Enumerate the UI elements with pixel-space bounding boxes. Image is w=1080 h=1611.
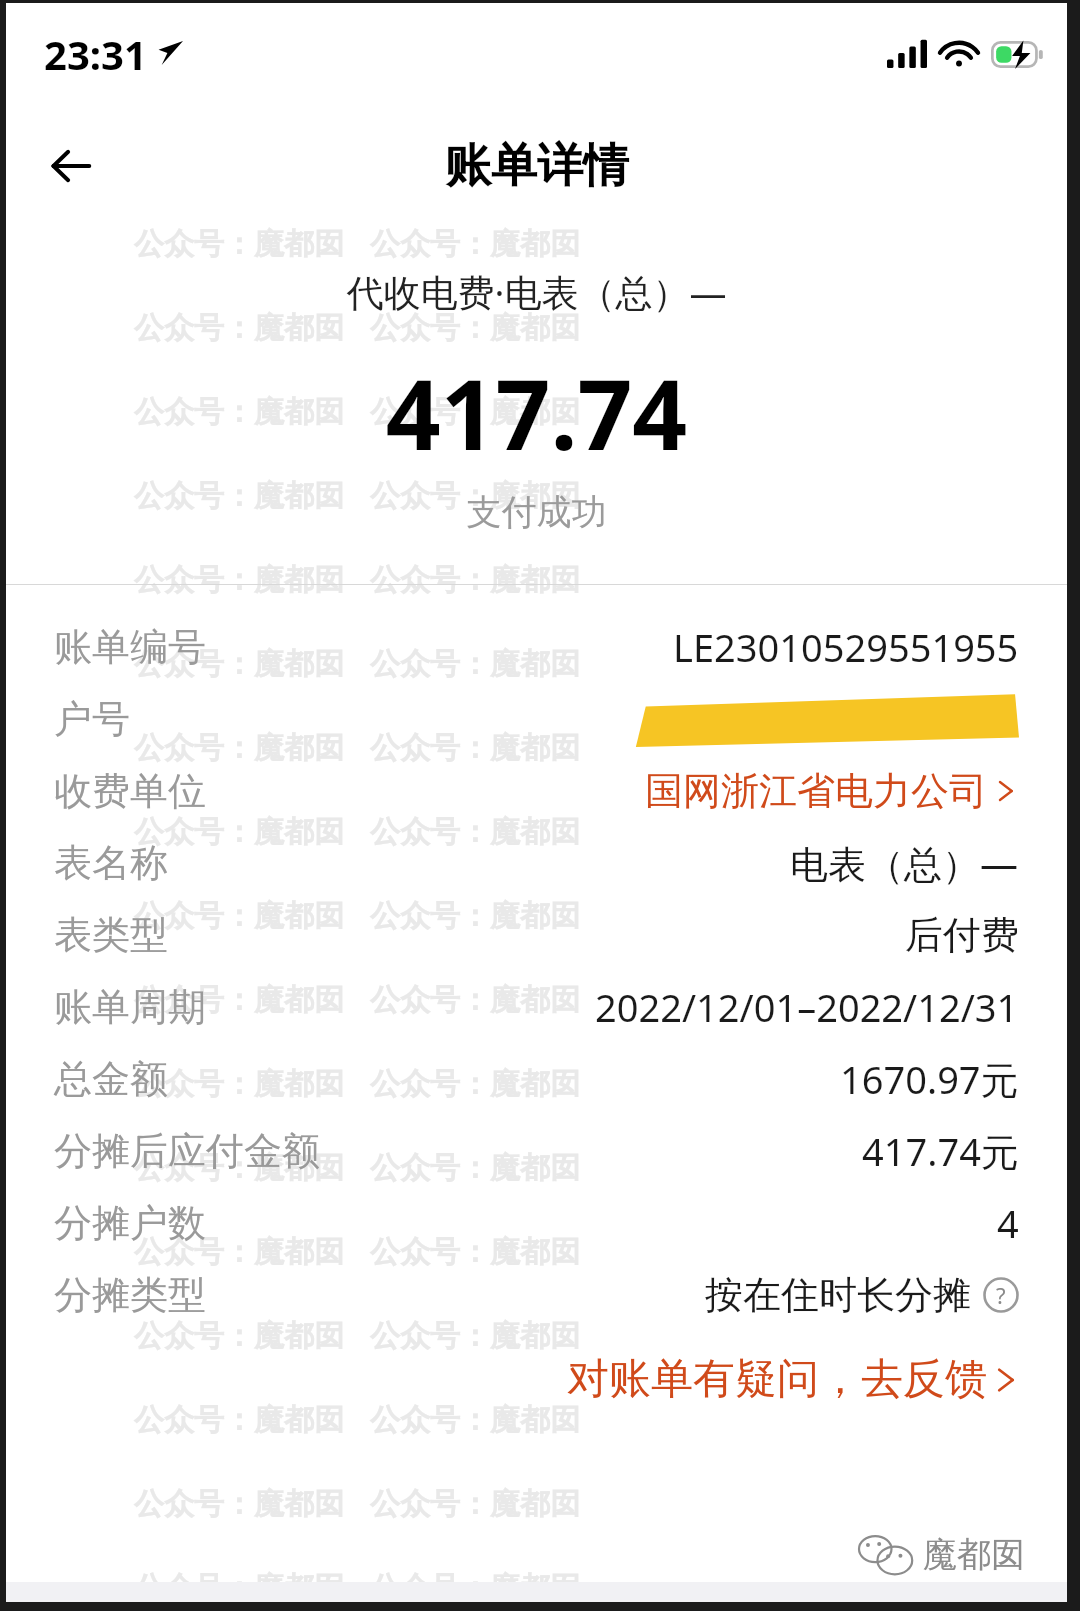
- staticText: ?: [996, 1280, 1006, 1310]
- staticText: 代收电费·电表（总）—: [6, 266, 1067, 317]
- staticText: 公众号：魔都囡: [134, 1065, 344, 1103]
- staticText: 账单详情: [445, 137, 629, 195]
- staticText: 1670.97元: [840, 1053, 1019, 1105]
- staticText: 支付成功: [6, 490, 1067, 534]
- staticText: 账单周期: [54, 983, 206, 1031]
- staticText: 后付费: [905, 911, 1019, 959]
- staticText: 公众号：魔都囡: [370, 1065, 580, 1103]
- staticText: 账单编号: [54, 623, 206, 671]
- staticText: 23:31: [44, 27, 147, 81]
- staticText: 公众号：魔都囡: [370, 225, 580, 263]
- staticText: 公众号：魔都囡: [370, 393, 580, 431]
- staticText: 公众号：魔都囡: [370, 477, 580, 515]
- staticText: 魔都囡: [923, 1533, 1025, 1576]
- staticText: 公众号：魔都囡: [134, 1569, 344, 1602]
- staticText: 公众号：魔都囡: [370, 813, 580, 851]
- staticText: 收费单位: [54, 767, 206, 815]
- staticText: 公众号：魔都囡: [134, 561, 344, 599]
- staticText: 公众号：魔都囡: [370, 1149, 580, 1187]
- staticText: 4: [997, 1197, 1019, 1249]
- staticText: 公众号：魔都囡: [134, 981, 344, 1019]
- button[interactable]: 对账单有疑问，去反馈: [567, 1353, 1021, 1406]
- staticText: 公众号：魔都囡: [134, 813, 344, 851]
- staticText: 公众号：魔都囡: [370, 645, 580, 683]
- staticText: 公众号：魔都囡: [370, 729, 580, 767]
- staticText: 公众号：魔都囡: [134, 393, 344, 431]
- staticText: 2022/12/01–2022/12/31: [595, 981, 1019, 1033]
- staticText: 按在住时长分摊: [705, 1271, 971, 1319]
- staticText: 公众号：魔都囡: [134, 1485, 344, 1523]
- staticText: 公众号：魔都囡: [370, 981, 580, 1019]
- staticText: 417.74元: [862, 1125, 1019, 1177]
- staticText: 对账单有疑问，去反馈: [567, 1353, 987, 1406]
- staticText: 总金额: [54, 1055, 168, 1103]
- staticText: 公众号：魔都囡: [370, 897, 580, 935]
- staticText: 国网浙江省电力公司: [645, 767, 987, 815]
- staticText: 电表（总）—: [790, 837, 1019, 889]
- staticText: 表名称: [54, 839, 168, 887]
- staticText: 公众号：魔都囡: [134, 645, 344, 683]
- staticText: 417.74: [6, 347, 1067, 478]
- staticText: 公众号：魔都囡: [134, 309, 344, 347]
- staticText: 公众号：魔都囡: [370, 561, 580, 599]
- button[interactable]: 收费单位: [6, 755, 1067, 827]
- button[interactable]: Back: [28, 124, 112, 208]
- staticText: 公众号：魔都囡: [134, 1401, 344, 1439]
- staticText: 公众号：魔都囡: [370, 1485, 580, 1523]
- staticText: 分摊户数: [54, 1199, 206, 1247]
- staticText: 分摊类型: [54, 1271, 206, 1319]
- staticText: 公众号：魔都囡: [134, 477, 344, 515]
- button[interactable]: Help: [983, 1277, 1019, 1313]
- staticText: LE23010529551955: [673, 621, 1019, 673]
- staticText: 公众号：魔都囡: [370, 309, 580, 347]
- staticText: 公众号：魔都囡: [134, 897, 344, 935]
- staticText: 公众号：魔都囡: [370, 1401, 580, 1439]
- staticText: 表类型: [54, 911, 168, 959]
- staticText: 公众号：魔都囡: [370, 1233, 580, 1271]
- staticText: 公众号：魔都囡: [134, 1149, 344, 1187]
- staticText: 公众号：魔都囡: [370, 1569, 580, 1602]
- staticText: 户号: [54, 695, 130, 743]
- staticText: 公众号：魔都囡: [134, 225, 344, 263]
- staticText: 公众号：魔都囡: [134, 1233, 344, 1271]
- staticText: 公众号：魔都囡: [370, 1317, 580, 1355]
- staticText: 分摊后应付金额: [54, 1127, 320, 1175]
- staticText: 公众号：魔都囡: [134, 729, 344, 767]
- staticText: 公众号：魔都囡: [134, 1317, 344, 1355]
